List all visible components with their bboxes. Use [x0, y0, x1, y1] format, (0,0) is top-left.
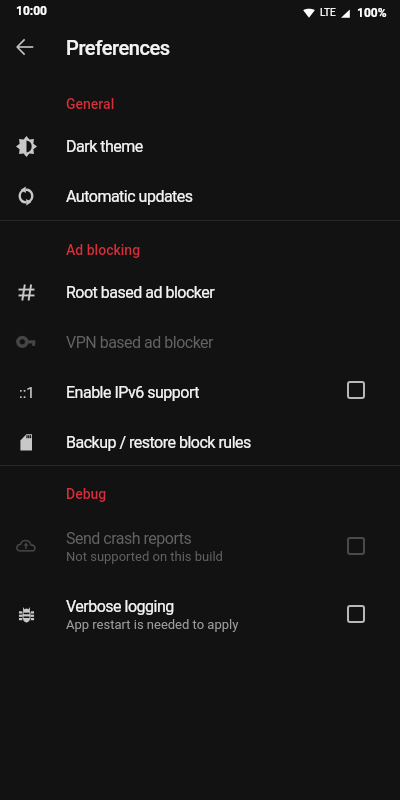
button[interactable]: Automatic updates	[0, 171, 400, 221]
staticText: Debug	[66, 486, 107, 502]
staticText: Send crash reports	[66, 529, 192, 548]
staticText: Dark theme	[66, 137, 143, 156]
staticText: 100%	[357, 6, 387, 20]
staticText: Verbose logging	[66, 597, 174, 616]
staticText: VPN based ad blocker	[66, 333, 214, 352]
staticText: ::1	[19, 384, 35, 402]
button[interactable]: Backup / restore block rules	[0, 417, 400, 467]
button[interactable]: Dark theme	[0, 121, 400, 171]
staticText: App restart is needed to apply	[66, 617, 239, 632]
staticText: Enable IPv6 support	[66, 383, 199, 402]
button[interactable]: Back	[1, 23, 49, 71]
button[interactable]: Root based ad blocker	[0, 267, 400, 317]
button[interactable]: Send crash reports	[0, 512, 400, 580]
button[interactable]: ::1	[0, 367, 400, 417]
staticText: Not supported on this build	[66, 549, 223, 564]
staticText: Root based ad blocker	[66, 283, 215, 302]
staticText: General	[66, 96, 115, 112]
button[interactable]: Verbose logging	[0, 580, 400, 648]
staticText: Ad blocking	[66, 242, 141, 258]
staticText: 10:00	[16, 4, 47, 18]
staticText: LTE	[320, 7, 336, 19]
staticText: Automatic updates	[66, 187, 193, 206]
staticText: Preferences	[66, 36, 170, 59]
button[interactable]: VPN based ad blocker	[0, 317, 400, 367]
staticText: Backup / restore block rules	[66, 433, 251, 452]
